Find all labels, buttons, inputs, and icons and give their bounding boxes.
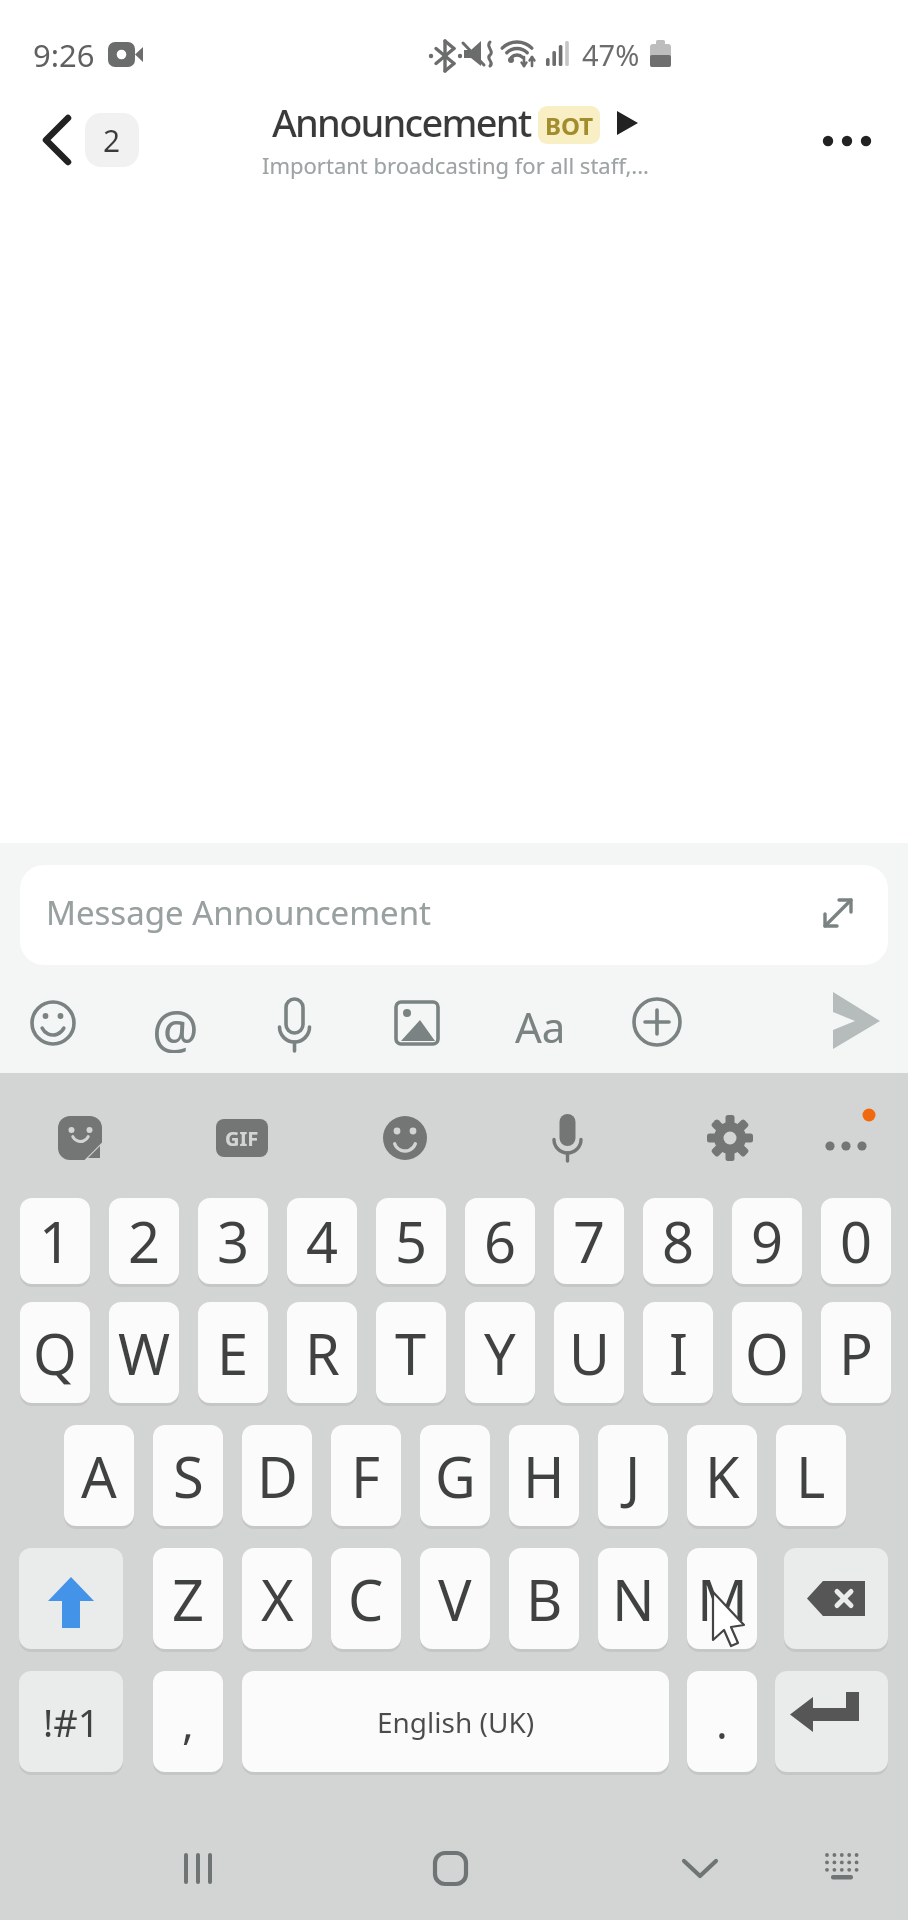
- staticText: Message Announcement: [46, 890, 432, 935]
- staticText: !#1: [43, 1696, 100, 1748]
- staticText: T: [395, 1315, 427, 1391]
- button[interactable]: 3: [198, 1198, 268, 1284]
- button[interactable]: [624, 995, 690, 1051]
- button[interactable]: [20, 995, 86, 1051]
- staticText: L: [796, 1438, 826, 1514]
- button[interactable]: 5: [376, 1198, 446, 1284]
- button[interactable]: K: [687, 1425, 757, 1526]
- staticText: Z: [172, 1561, 205, 1637]
- button[interactable]: [665, 1838, 735, 1898]
- button[interactable]: [142, 995, 208, 1051]
- staticText: GIF: [225, 1125, 259, 1152]
- button[interactable]: ,: [153, 1671, 223, 1772]
- staticText: 5: [395, 1203, 428, 1279]
- button[interactable]: [775, 1671, 888, 1772]
- button[interactable]: English (UK): [242, 1671, 669, 1772]
- button[interactable]: [373, 1108, 437, 1168]
- staticText: BOT: [545, 109, 594, 142]
- button[interactable]: 9: [732, 1198, 802, 1284]
- button[interactable]: [815, 1108, 885, 1168]
- button[interactable]: 1: [20, 1198, 90, 1284]
- button[interactable]: M: [687, 1548, 757, 1649]
- staticText: S: [173, 1438, 204, 1514]
- button[interactable]: !#1: [19, 1671, 123, 1772]
- button[interactable]: 6: [465, 1198, 535, 1284]
- button[interactable]: [20, 865, 888, 965]
- staticText: 7: [573, 1203, 606, 1279]
- button[interactable]: U: [554, 1302, 624, 1403]
- staticText: @: [152, 993, 199, 1053]
- button[interactable]: 4: [287, 1198, 357, 1284]
- button[interactable]: P: [821, 1302, 891, 1403]
- button[interactable]: T: [376, 1302, 446, 1403]
- button[interactable]: [262, 995, 328, 1051]
- button[interactable]: [85, 113, 139, 167]
- button[interactable]: C: [331, 1548, 401, 1649]
- button[interactable]: Z: [153, 1548, 223, 1649]
- button[interactable]: Q: [20, 1302, 90, 1403]
- button[interactable]: Aa: [505, 998, 575, 1048]
- button[interactable]: G: [420, 1425, 490, 1526]
- button[interactable]: [784, 1548, 888, 1649]
- button[interactable]: N: [598, 1548, 668, 1649]
- staticText: W: [118, 1315, 171, 1391]
- staticText: R: [305, 1315, 340, 1391]
- button[interactable]: S: [153, 1425, 223, 1526]
- staticText: 1: [39, 1203, 72, 1279]
- button[interactable]: O: [732, 1302, 802, 1403]
- button[interactable]: X: [242, 1548, 312, 1649]
- button[interactable]: [535, 1108, 599, 1168]
- button[interactable]: B: [509, 1548, 579, 1649]
- staticText: G: [435, 1438, 476, 1514]
- button[interactable]: [698, 1108, 762, 1168]
- staticText: H: [523, 1438, 565, 1514]
- button[interactable]: [800, 110, 890, 170]
- button[interactable]: E: [198, 1302, 268, 1403]
- staticText: Aa: [515, 998, 566, 1048]
- staticText: X: [261, 1561, 294, 1637]
- button[interactable]: [384, 995, 450, 1051]
- staticText: O: [745, 1315, 789, 1391]
- staticText: Announcement: [272, 96, 531, 148]
- button[interactable]: J: [598, 1425, 668, 1526]
- button[interactable]: [810, 985, 890, 1055]
- button[interactable]: L: [776, 1425, 846, 1526]
- button[interactable]: [19, 1548, 123, 1649]
- staticText: F: [351, 1438, 381, 1514]
- button[interactable]: 2: [85, 113, 139, 167]
- button[interactable]: GIF: [216, 1119, 268, 1157]
- staticText: English (UK): [377, 1703, 535, 1741]
- button[interactable]: I: [643, 1302, 713, 1403]
- staticText: 3: [217, 1203, 250, 1279]
- button[interactable]: [30, 110, 90, 170]
- staticText: V: [438, 1561, 472, 1637]
- staticText: A: [81, 1438, 117, 1514]
- button[interactable]: H: [509, 1425, 579, 1526]
- button[interactable]: [415, 1838, 485, 1898]
- button[interactable]: F: [331, 1425, 401, 1526]
- staticText: ,: [182, 1692, 194, 1752]
- button[interactable]: [48, 1108, 112, 1168]
- button[interactable]: [808, 1838, 878, 1898]
- staticText: J: [625, 1438, 641, 1514]
- button[interactable]: 7: [554, 1198, 624, 1284]
- button[interactable]: D: [242, 1425, 312, 1526]
- button[interactable]: .: [687, 1671, 757, 1772]
- staticText: 2: [103, 120, 121, 161]
- button[interactable]: 0: [821, 1198, 891, 1284]
- staticText: .: [716, 1692, 728, 1752]
- staticText: C: [348, 1561, 384, 1637]
- staticText: 9: [751, 1203, 784, 1279]
- button[interactable]: R: [287, 1302, 357, 1403]
- staticText: 6: [484, 1203, 517, 1279]
- button[interactable]: A: [64, 1425, 134, 1526]
- button[interactable]: [160, 1838, 230, 1898]
- button[interactable]: V: [420, 1548, 490, 1649]
- staticText: U: [569, 1315, 610, 1391]
- button[interactable]: Y: [465, 1302, 535, 1403]
- staticText: E: [217, 1315, 249, 1391]
- button[interactable]: 8: [643, 1198, 713, 1284]
- button[interactable]: 2: [109, 1198, 179, 1284]
- staticText: 9:26: [33, 34, 95, 76]
- button[interactable]: W: [109, 1302, 179, 1403]
